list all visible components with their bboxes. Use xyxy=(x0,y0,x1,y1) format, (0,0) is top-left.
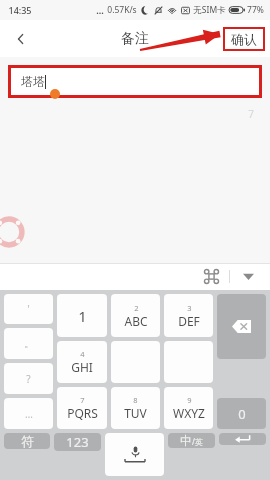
staticText: 塔塔 xyxy=(21,74,45,89)
button[interactable]: 2 xyxy=(111,294,160,337)
staticText: ... xyxy=(96,4,104,16)
button[interactable]: Hide keyboard xyxy=(234,263,262,290)
staticText: 2 xyxy=(134,303,139,313)
button[interactable]: Space / Voice input xyxy=(105,433,164,476)
button[interactable]: Chinese English toggle xyxy=(168,433,215,448)
button[interactable]: 9 xyxy=(164,387,213,429)
button[interactable]: Back xyxy=(4,22,38,56)
button[interactable]: 7 xyxy=(57,387,107,429)
staticText: 7 xyxy=(248,107,254,121)
staticText: /英 xyxy=(192,436,203,447)
staticText: 0 xyxy=(238,405,246,423)
staticText: 7 xyxy=(80,395,85,405)
button[interactable]: 确认 xyxy=(231,31,257,47)
staticText: ABC xyxy=(124,313,148,329)
staticText: 4 xyxy=(80,349,85,359)
staticText: WXYZ xyxy=(173,405,205,421)
staticText: 14:35 xyxy=(8,4,32,16)
staticText: 符 xyxy=(21,433,34,449)
staticText: PQRS xyxy=(67,405,98,421)
button[interactable]: … xyxy=(4,398,53,429)
staticText: 中 xyxy=(180,433,192,448)
staticText: TUV xyxy=(124,405,147,421)
button[interactable]: Enter xyxy=(219,433,266,445)
staticText: DEF xyxy=(178,313,200,329)
button[interactable]: 8 xyxy=(111,387,160,429)
staticText: 无SIM卡 xyxy=(193,4,226,16)
button[interactable]: 3 xyxy=(164,294,213,337)
button[interactable]: 。 xyxy=(4,328,53,359)
staticText: 。 xyxy=(24,337,34,350)
button[interactable]: Backspace xyxy=(217,294,266,359)
staticText: 0.57K/s xyxy=(107,4,137,16)
staticText: 确认 xyxy=(231,31,257,47)
button[interactable]: 塔塔 xyxy=(11,68,259,95)
button[interactable]: ? xyxy=(4,363,53,394)
staticText: … xyxy=(25,407,33,421)
staticText: 备注 xyxy=(121,30,149,48)
staticText: ' xyxy=(27,302,30,316)
staticText: 3 xyxy=(187,303,192,313)
staticText: 1 xyxy=(78,306,87,326)
staticText: 8 xyxy=(133,395,138,405)
staticText: 9 xyxy=(187,395,192,405)
staticText: 123 xyxy=(66,433,89,451)
button[interactable]: 0 xyxy=(217,398,266,429)
button[interactable]: 1 xyxy=(57,294,107,337)
button[interactable]: Symbols xyxy=(4,433,50,449)
staticText: ? xyxy=(26,372,31,386)
button[interactable]: Numbers xyxy=(54,433,101,451)
staticText: 77% xyxy=(247,4,264,16)
staticText: GHI xyxy=(71,359,93,375)
button[interactable]: ' xyxy=(4,294,53,324)
button[interactable]: 4 xyxy=(57,341,107,383)
button[interactable]: Input options xyxy=(197,263,225,290)
